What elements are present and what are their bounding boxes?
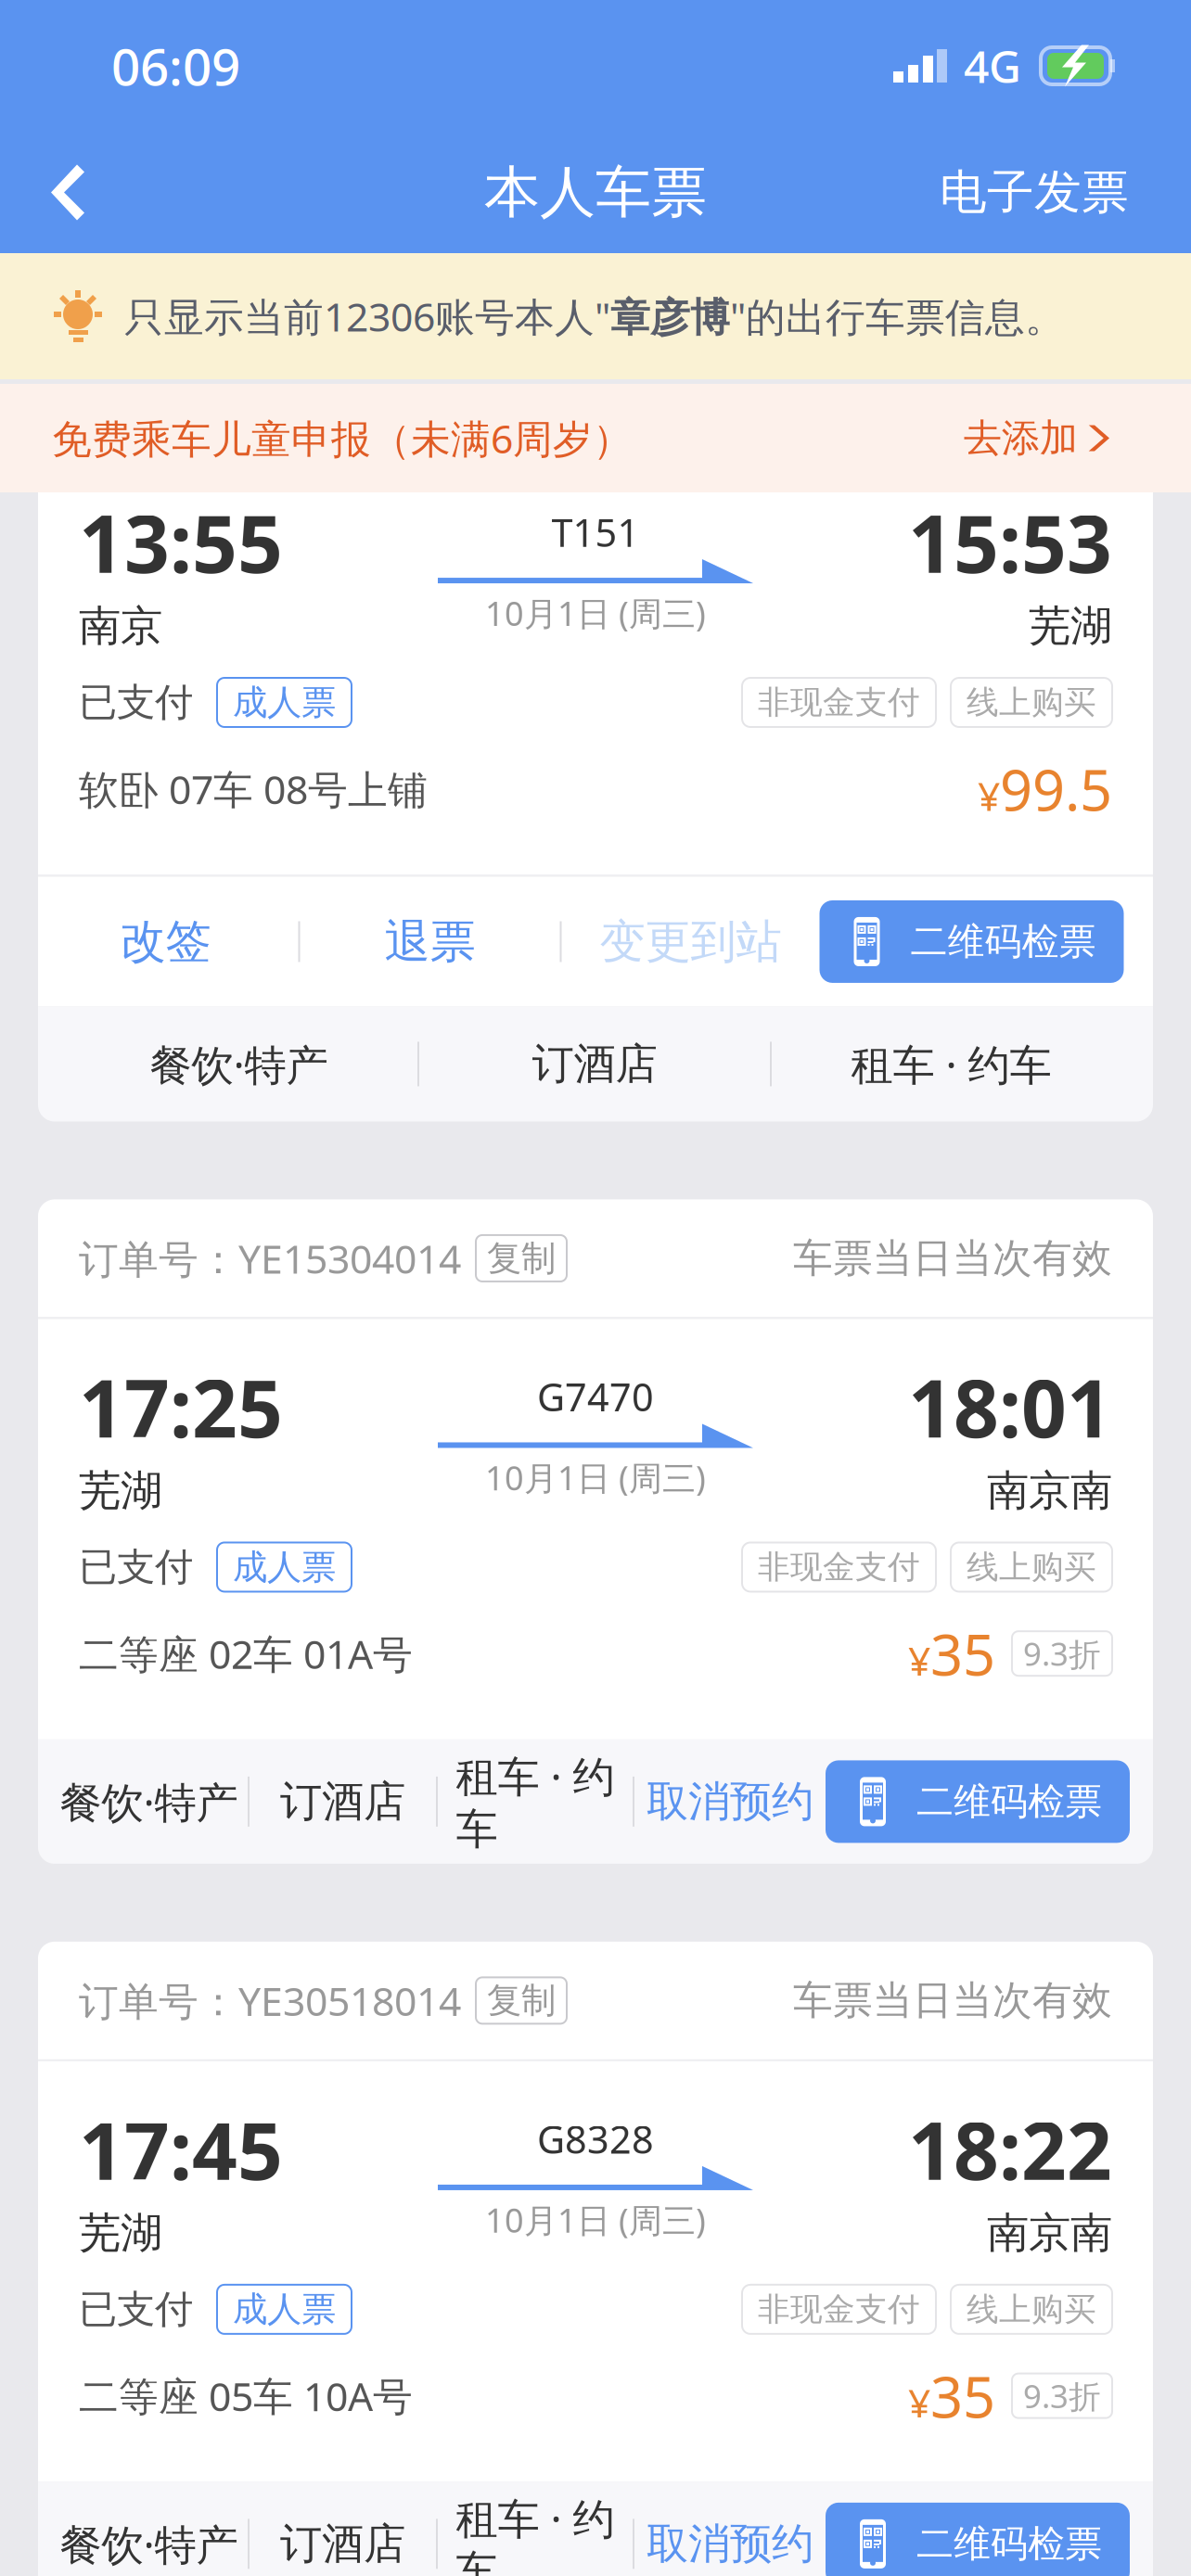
staticText: 17:25: [79, 1354, 283, 1459]
staticText: 18:22: [908, 2097, 1112, 2202]
staticText: 免费乘车儿童申报（未满6周岁）: [52, 412, 633, 464]
button[interactable]: 复制: [461, 1235, 567, 1281]
staticText: 非现金支付: [758, 683, 920, 722]
staticText: 已支付: [79, 2286, 193, 2333]
staticText: 10月1日 (周三): [485, 2198, 706, 2242]
button[interactable]: 餐饮·特产: [38, 1006, 417, 1121]
staticText: 餐饮·特产: [60, 1774, 238, 1830]
staticText: 复制: [487, 1237, 556, 1280]
button[interactable]: 订酒店: [419, 1006, 770, 1121]
staticText: 去添加: [964, 415, 1078, 462]
button[interactable]: 餐饮·特产: [50, 2482, 248, 2576]
staticText: 订单号：YE15304014: [79, 1232, 461, 1285]
staticText: 非现金支付: [758, 2290, 920, 2329]
staticText: 15:53: [908, 490, 1112, 595]
staticText: T151: [551, 506, 640, 557]
staticText: 变更到站: [600, 914, 781, 970]
staticText: 车票当日当次有效: [793, 1976, 1112, 2025]
staticText: 车票当日当次有效: [793, 369, 1112, 418]
staticText: 只显示当前12306账号本人"章彦博"的出行车票信息。: [124, 290, 1065, 343]
staticText: 线上购买: [967, 1547, 1096, 1587]
button[interactable]: 退票: [300, 877, 560, 1006]
staticText: 芜湖: [1029, 600, 1112, 652]
button[interactable]: 订酒店: [250, 1739, 436, 1864]
staticText: 餐饮·特产: [150, 1036, 328, 1092]
staticText: 租车 · 约车: [851, 1036, 1051, 1092]
button[interactable]: 租车 · 约车: [438, 2482, 633, 2576]
staticText: 9.3折: [1023, 1632, 1101, 1675]
staticText: 复制: [487, 372, 556, 415]
staticText: 成人票: [233, 2288, 336, 2331]
staticText: 南京南: [987, 1465, 1112, 1517]
button[interactable]: 改签: [33, 877, 298, 1006]
staticText: 非现金支付: [758, 1547, 920, 1587]
button[interactable]: 二维码检票: [826, 2503, 1130, 2576]
staticText: 线上购买: [967, 683, 1096, 722]
staticText: 复制: [487, 1979, 556, 2022]
staticText: G8328: [537, 2113, 654, 2164]
button[interactable]: 二维码检票: [826, 1760, 1130, 1843]
button[interactable]: 租车 · 约车: [438, 1739, 633, 1864]
button[interactable]: 变更到站: [562, 877, 820, 1006]
staticText: 10月1日 (周三): [485, 591, 706, 635]
staticText: 已支付: [79, 679, 193, 726]
staticText: 软卧 07车 08号上铺: [79, 763, 428, 815]
button[interactable]: 电子发票: [903, 132, 1191, 253]
button[interactable]: 复制: [461, 370, 567, 417]
staticText: 订酒店: [280, 2518, 405, 2570]
staticText: 二等座 02车 01A号: [79, 1627, 413, 1680]
staticText: 租车 · 约车: [456, 2490, 615, 2576]
staticText: 改签: [120, 914, 211, 970]
staticText: 成人票: [233, 1546, 336, 1588]
button[interactable]: 返回: [0, 135, 126, 250]
staticText: 4G: [964, 36, 1021, 95]
staticText: 退票: [384, 914, 475, 970]
staticText: 订单号：YE30518014: [79, 1974, 461, 2027]
staticText: 取消预约: [647, 1776, 813, 1827]
staticText: 南京南: [987, 2207, 1112, 2259]
button[interactable]: 取消预约: [634, 1739, 826, 1864]
staticText: 10月1日 (周三): [485, 1455, 706, 1500]
staticText: 车票当日当次有效: [793, 1234, 1112, 1283]
staticText: 芜湖: [79, 1465, 162, 1517]
button[interactable]: 餐饮·特产: [50, 1739, 248, 1864]
staticText: 线上购买: [967, 2290, 1096, 2329]
staticText: 租车 · 约车: [456, 1748, 615, 1855]
staticText: 南京: [79, 600, 162, 652]
staticText: ¥99.5: [978, 751, 1112, 827]
staticText: 13:55: [79, 490, 283, 595]
staticText: ¥35: [908, 2358, 995, 2433]
staticText: 订单号：YE15304013: [79, 367, 461, 420]
staticText: 电子发票: [940, 164, 1129, 221]
button[interactable]: 租车 · 约车: [772, 1006, 1153, 1121]
staticText: 二等座 05车 10A号: [79, 2369, 413, 2422]
staticText: 二维码检票: [910, 919, 1096, 964]
button[interactable]: 订酒店: [250, 2482, 436, 2576]
button[interactable]: 免费乘车儿童申报（未满6周岁）: [0, 384, 1191, 492]
button[interactable]: 取消预约: [634, 2482, 826, 2576]
staticText: 17:45: [79, 2097, 283, 2202]
button[interactable]: 复制: [461, 1977, 567, 2024]
staticText: 二维码检票: [916, 2521, 1102, 2567]
staticText: 芜湖: [79, 2207, 162, 2259]
staticText: ¥35: [908, 1616, 995, 1691]
staticText: 已支付: [79, 1544, 193, 1591]
staticText: 餐饮·特产: [60, 2516, 238, 2572]
staticText: 订酒店: [280, 1776, 405, 1827]
button[interactable]: 二维码检票: [820, 900, 1124, 983]
staticText: 9.3折: [1023, 2374, 1101, 2417]
staticText: 取消预约: [647, 2518, 813, 2570]
staticText: G7470: [537, 1371, 654, 1422]
staticText: 订酒店: [532, 1038, 657, 1090]
staticText: 18:01: [908, 1354, 1112, 1459]
staticText: 06:09: [111, 32, 240, 99]
staticText: 二维码检票: [916, 1779, 1102, 1824]
staticText: 成人票: [233, 681, 336, 724]
staticText: 本人车票: [484, 158, 707, 227]
